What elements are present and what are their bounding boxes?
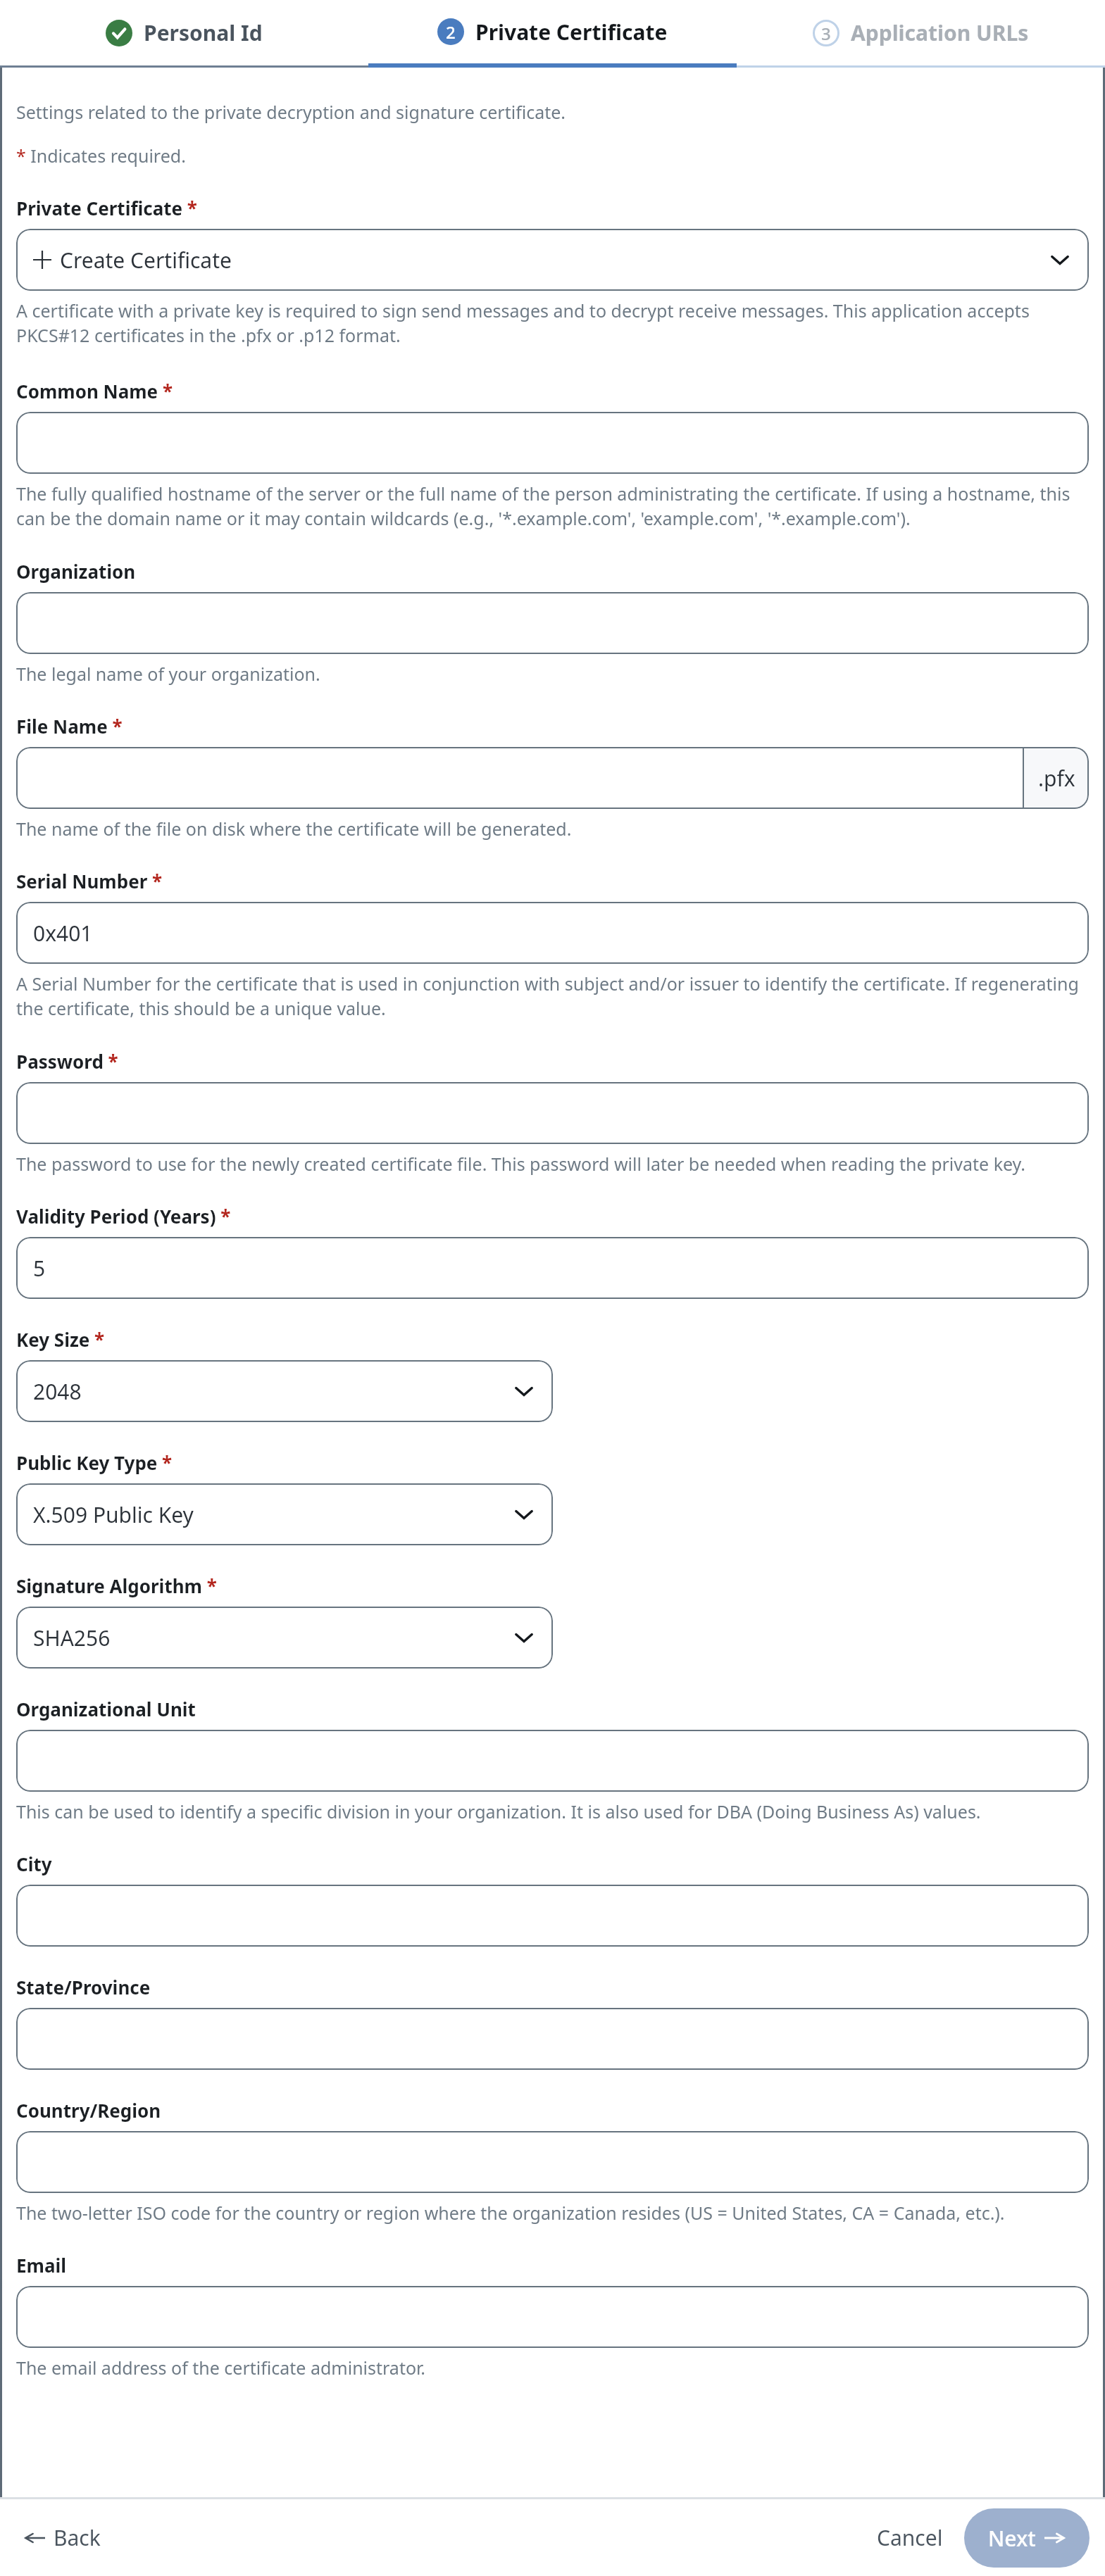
- button[interactable]: [16, 1730, 1089, 1792]
- staticText: Personal Id: [144, 18, 263, 47]
- staticText: Country/Region: [16, 2098, 161, 2123]
- staticText: Organizational Unit: [16, 1697, 196, 1721]
- staticText: A Serial Number for the certificate that…: [16, 972, 1089, 1021]
- staticText: 2048: [33, 1377, 82, 1406]
- staticText: The password to use for the newly create…: [16, 1152, 1026, 1176]
- staticText: Settings related to the private decrypti…: [16, 100, 566, 124]
- staticText: .pfx: [1038, 764, 1075, 793]
- staticText: This can be used to identify a specific …: [16, 1799, 981, 1823]
- staticText: Application URLs: [851, 18, 1029, 47]
- button[interactable]: 2: [368, 0, 737, 68]
- staticText: City: [16, 1852, 52, 1876]
- staticText: Email: [16, 2253, 67, 2277]
- button[interactable]: SHA256: [16, 1607, 553, 1669]
- button[interactable]: [16, 1082, 1089, 1144]
- staticText: 5: [33, 1254, 46, 1283]
- staticText: State/Province: [16, 1975, 151, 1999]
- button[interactable]: [16, 2008, 1089, 2070]
- staticText: The name of the file on disk where the c…: [16, 817, 572, 841]
- button[interactable]: [16, 2131, 1089, 2193]
- staticText: 2: [446, 20, 456, 44]
- button[interactable]: 3: [737, 0, 1105, 68]
- staticText: Back: [54, 2523, 101, 2552]
- button[interactable]: Next: [964, 2508, 1090, 2568]
- staticText: X.509 Public Key: [33, 1500, 194, 1529]
- staticText: Common Name *: [16, 379, 173, 403]
- button[interactable]: X.509 Public Key: [16, 1483, 553, 1545]
- staticText: Serial Number *: [16, 869, 163, 893]
- staticText: Validity Period (Years) *: [16, 1204, 231, 1229]
- staticText: Cancel: [877, 2523, 943, 2552]
- button[interactable]: .pfx: [16, 747, 1089, 809]
- staticText: 3: [821, 22, 831, 45]
- button[interactable]: Create Certificate: [16, 229, 1089, 291]
- staticText: Password *: [16, 1049, 118, 1074]
- staticText: Private Certificate *: [16, 196, 197, 220]
- button[interactable]: 2048: [16, 1360, 553, 1422]
- button[interactable]: [16, 2286, 1089, 2348]
- button[interactable]: Personal Id: [0, 0, 368, 68]
- staticText: The two-letter ISO code for the country …: [16, 2201, 1005, 2225]
- staticText: The fully qualified hostname of the serv…: [16, 482, 1089, 531]
- staticText: A certificate with a private key is requ…: [16, 299, 1089, 348]
- staticText: Next: [988, 2524, 1036, 2553]
- button[interactable]: [16, 592, 1089, 654]
- staticText: Create Certificate: [60, 246, 232, 275]
- staticText: Key Size *: [16, 1327, 105, 1352]
- button[interactable]: 5: [16, 1237, 1089, 1299]
- staticText: * Indicates required.: [16, 144, 186, 168]
- staticText: Organization: [16, 559, 136, 584]
- staticText: The email address of the certificate adm…: [16, 2356, 426, 2380]
- staticText: File Name *: [16, 714, 123, 739]
- staticText: SHA256: [33, 1623, 111, 1652]
- staticText: Private Certificate: [475, 18, 668, 46]
- button[interactable]: Cancel: [866, 2515, 954, 2561]
- button[interactable]: [16, 412, 1089, 474]
- button[interactable]: [16, 1885, 1089, 1947]
- button[interactable]: Back: [15, 2516, 109, 2559]
- button[interactable]: 0x401: [16, 902, 1089, 964]
- staticText: Signature Algorithm *: [16, 1573, 217, 1598]
- staticText: The legal name of your organization.: [16, 662, 320, 686]
- staticText: 0x401: [33, 919, 93, 948]
- staticText: Public Key Type *: [16, 1450, 173, 1475]
